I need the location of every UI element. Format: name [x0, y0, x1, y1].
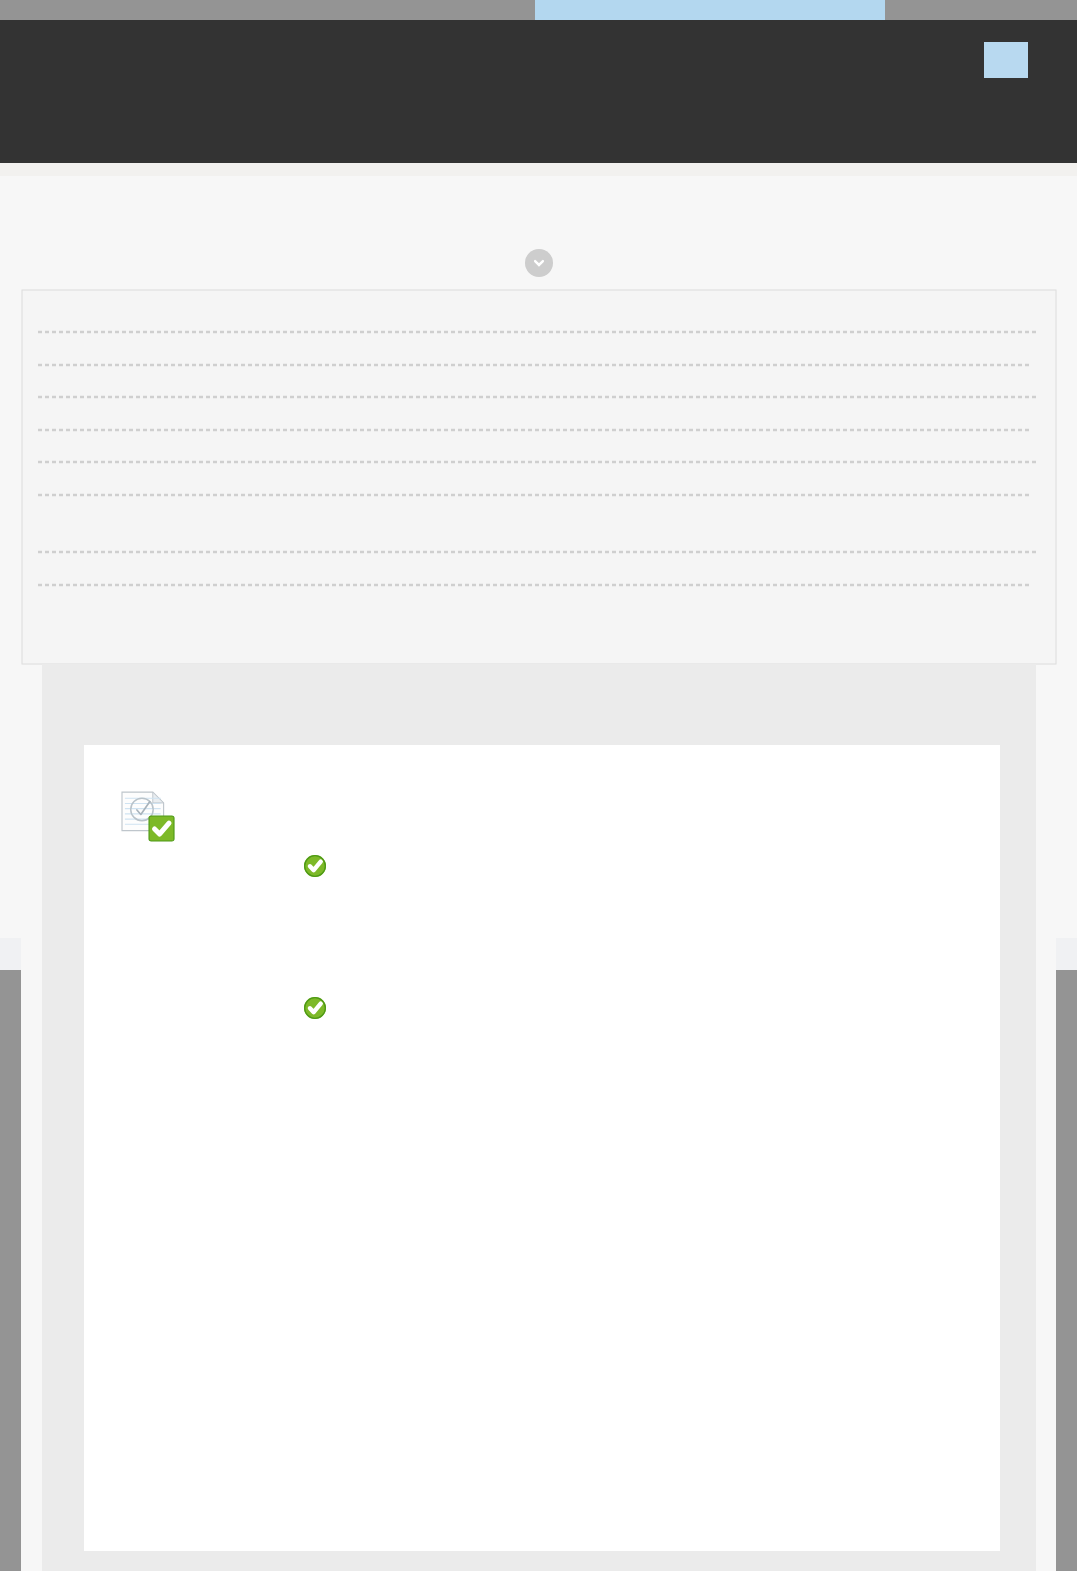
button[interactable]: Survey completed [84, 745, 1000, 1551]
other: Completed [304, 997, 326, 1019]
button[interactable]: Expand [525, 249, 553, 277]
button[interactable] [22, 290, 1056, 664]
other: Survey completed [122, 789, 174, 841]
other: Completed [304, 855, 326, 877]
